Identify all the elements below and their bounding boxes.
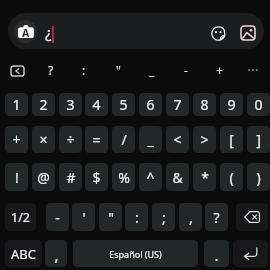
- staticText: _: [147, 130, 154, 149]
- staticText: ,: [189, 208, 193, 227]
- staticText: ): [256, 168, 261, 187]
- button[interactable]: [: [220, 126, 243, 153]
- button[interactable]: -: [46, 203, 69, 231]
- button[interactable]: ': [72, 203, 95, 231]
- staticText: ?: [213, 208, 220, 227]
- staticText: 1: [12, 95, 21, 114]
- button[interactable]: ,: [179, 203, 202, 231]
- staticText: =: [92, 130, 101, 149]
- button[interactable]: @: [32, 163, 55, 191]
- staticText: %: [118, 168, 130, 187]
- staticText: ?: [48, 62, 54, 78]
- staticText: ÷: [66, 130, 75, 149]
- button[interactable]: ): [247, 163, 270, 191]
- staticText: ;: [162, 208, 166, 227]
- button[interactable]: &: [166, 163, 189, 191]
- button[interactable]: (: [220, 163, 243, 191]
- staticText: ,: [54, 245, 59, 265]
- button[interactable]: ^: [139, 163, 162, 191]
- staticText: 7: [173, 95, 182, 114]
- staticText: .: [214, 245, 219, 265]
- button[interactable]: Enter: [233, 240, 268, 267]
- staticText: 4: [92, 95, 101, 114]
- staticText: &: [172, 168, 183, 187]
- staticText: :: [82, 62, 86, 78]
- button[interactable]: Autocorrect: [8, 13, 264, 49]
- button[interactable]: 1/2: [5, 203, 36, 231]
- button[interactable]: ": [103, 60, 133, 80]
- button[interactable]: 6: [139, 93, 162, 116]
- button[interactable]: ;: [152, 203, 175, 231]
- button[interactable]: 5: [112, 93, 135, 116]
- button[interactable]: More options: [238, 60, 268, 80]
- button[interactable]: :: [125, 203, 148, 231]
- staticText: ¿: [45, 22, 52, 42]
- staticText: 5: [119, 95, 128, 114]
- staticText: Español (US): [109, 248, 162, 260]
- button[interactable]: ×: [32, 126, 55, 153]
- staticText: @: [37, 168, 50, 187]
- button[interactable]: 3: [59, 93, 82, 116]
- button[interactable]: =: [85, 126, 108, 153]
- button[interactable]: Stickers: [207, 22, 229, 44]
- button[interactable]: -: [171, 60, 201, 80]
- button[interactable]: /: [112, 126, 135, 153]
- button[interactable]: 4: [85, 93, 108, 116]
- staticText: $: [92, 168, 101, 187]
- staticText: ABC: [11, 245, 36, 263]
- button[interactable]: :: [69, 60, 99, 80]
- staticText: 1/2: [11, 209, 30, 226]
- button[interactable]: #: [59, 163, 82, 191]
- button[interactable]: <: [166, 126, 189, 153]
- button[interactable]: +: [5, 126, 28, 153]
- staticText: +: [12, 130, 21, 149]
- button[interactable]: 1: [5, 93, 28, 116]
- button[interactable]: Show more suggestions: [4, 61, 30, 81]
- button[interactable]: 7: [166, 93, 189, 116]
- staticText: +: [216, 62, 223, 78]
- button[interactable]: ?: [36, 60, 66, 80]
- button[interactable]: Backspace: [236, 203, 268, 231]
- button[interactable]: !: [5, 163, 28, 191]
- button[interactable]: ]: [247, 126, 270, 153]
- staticText: [: [229, 130, 234, 149]
- staticText: 6: [146, 95, 155, 114]
- button[interactable]: _: [137, 60, 167, 80]
- button[interactable]: ,: [45, 240, 67, 267]
- button[interactable]: ": [99, 203, 122, 231]
- button[interactable]: Autocorrect: [14, 20, 37, 43]
- button[interactable]: *: [193, 163, 216, 191]
- button[interactable]: ?: [205, 203, 228, 231]
- staticText: /: [121, 130, 127, 149]
- staticText: 2: [39, 95, 48, 114]
- staticText: ": [108, 208, 114, 227]
- button[interactable]: .: [204, 240, 229, 267]
- staticText: -: [55, 208, 60, 227]
- button[interactable]: ÷: [59, 126, 82, 153]
- button[interactable]: 0: [247, 93, 270, 116]
- staticText: 8: [200, 95, 209, 114]
- button[interactable]: Insert image: [237, 22, 259, 44]
- staticText: ×: [39, 130, 48, 149]
- staticText: ^: [146, 168, 155, 187]
- staticText: -: [184, 62, 188, 78]
- button[interactable]: %: [112, 163, 135, 191]
- staticText: _: [149, 62, 155, 78]
- button[interactable]: >: [193, 126, 216, 153]
- staticText: *: [201, 168, 209, 187]
- button[interactable]: 9: [220, 93, 243, 116]
- button[interactable]: +: [204, 60, 234, 80]
- button[interactable]: _: [139, 126, 162, 153]
- button[interactable]: Español (US): [73, 240, 198, 267]
- staticText: ': [82, 208, 86, 227]
- staticText: 3: [66, 95, 75, 114]
- button[interactable]: $: [85, 163, 108, 191]
- staticText: ": [116, 62, 121, 78]
- button[interactable]: ABC: [5, 240, 42, 267]
- staticText: ]: [256, 130, 261, 149]
- staticText: A: [22, 26, 30, 40]
- staticText: <: [173, 130, 182, 149]
- button[interactable]: 2: [32, 93, 55, 116]
- staticText: #: [66, 168, 76, 187]
- button[interactable]: 8: [193, 93, 216, 116]
